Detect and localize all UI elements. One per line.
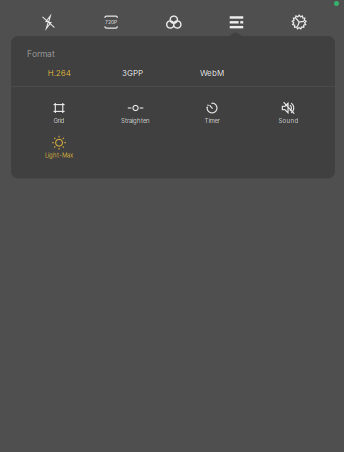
staticText: WebM: [200, 68, 224, 78]
button[interactable]: WebM: [168, 66, 246, 80]
button[interactable]: Sound: [250, 101, 327, 124]
staticText: Grid: [53, 117, 64, 124]
button[interactable]: Flash off: [17, 0, 80, 32]
staticText: Format: [27, 49, 55, 59]
button[interactable]: Colour filters: [142, 0, 205, 32]
button[interactable]: Capture settings: [205, 0, 268, 32]
button[interactable]: Light-Max: [21, 136, 97, 158]
staticText: Timer: [205, 117, 220, 124]
button[interactable]: Straighten: [97, 101, 174, 124]
staticText: 3GPP: [122, 68, 143, 78]
staticText: H.264: [48, 68, 71, 78]
button[interactable]: H.264: [27, 66, 90, 80]
staticText: Sound: [279, 117, 299, 124]
button[interactable]: Grid: [21, 101, 97, 124]
button[interactable]: 3GPP: [90, 66, 168, 80]
button[interactable]: Settings: [268, 0, 330, 32]
staticText: Straighten: [121, 117, 150, 124]
button[interactable]: Timer: [174, 101, 250, 124]
button[interactable]: Resolution 720P: [80, 0, 142, 32]
staticText: 720P: [105, 19, 117, 25]
staticText: Light-Max: [45, 152, 73, 159]
